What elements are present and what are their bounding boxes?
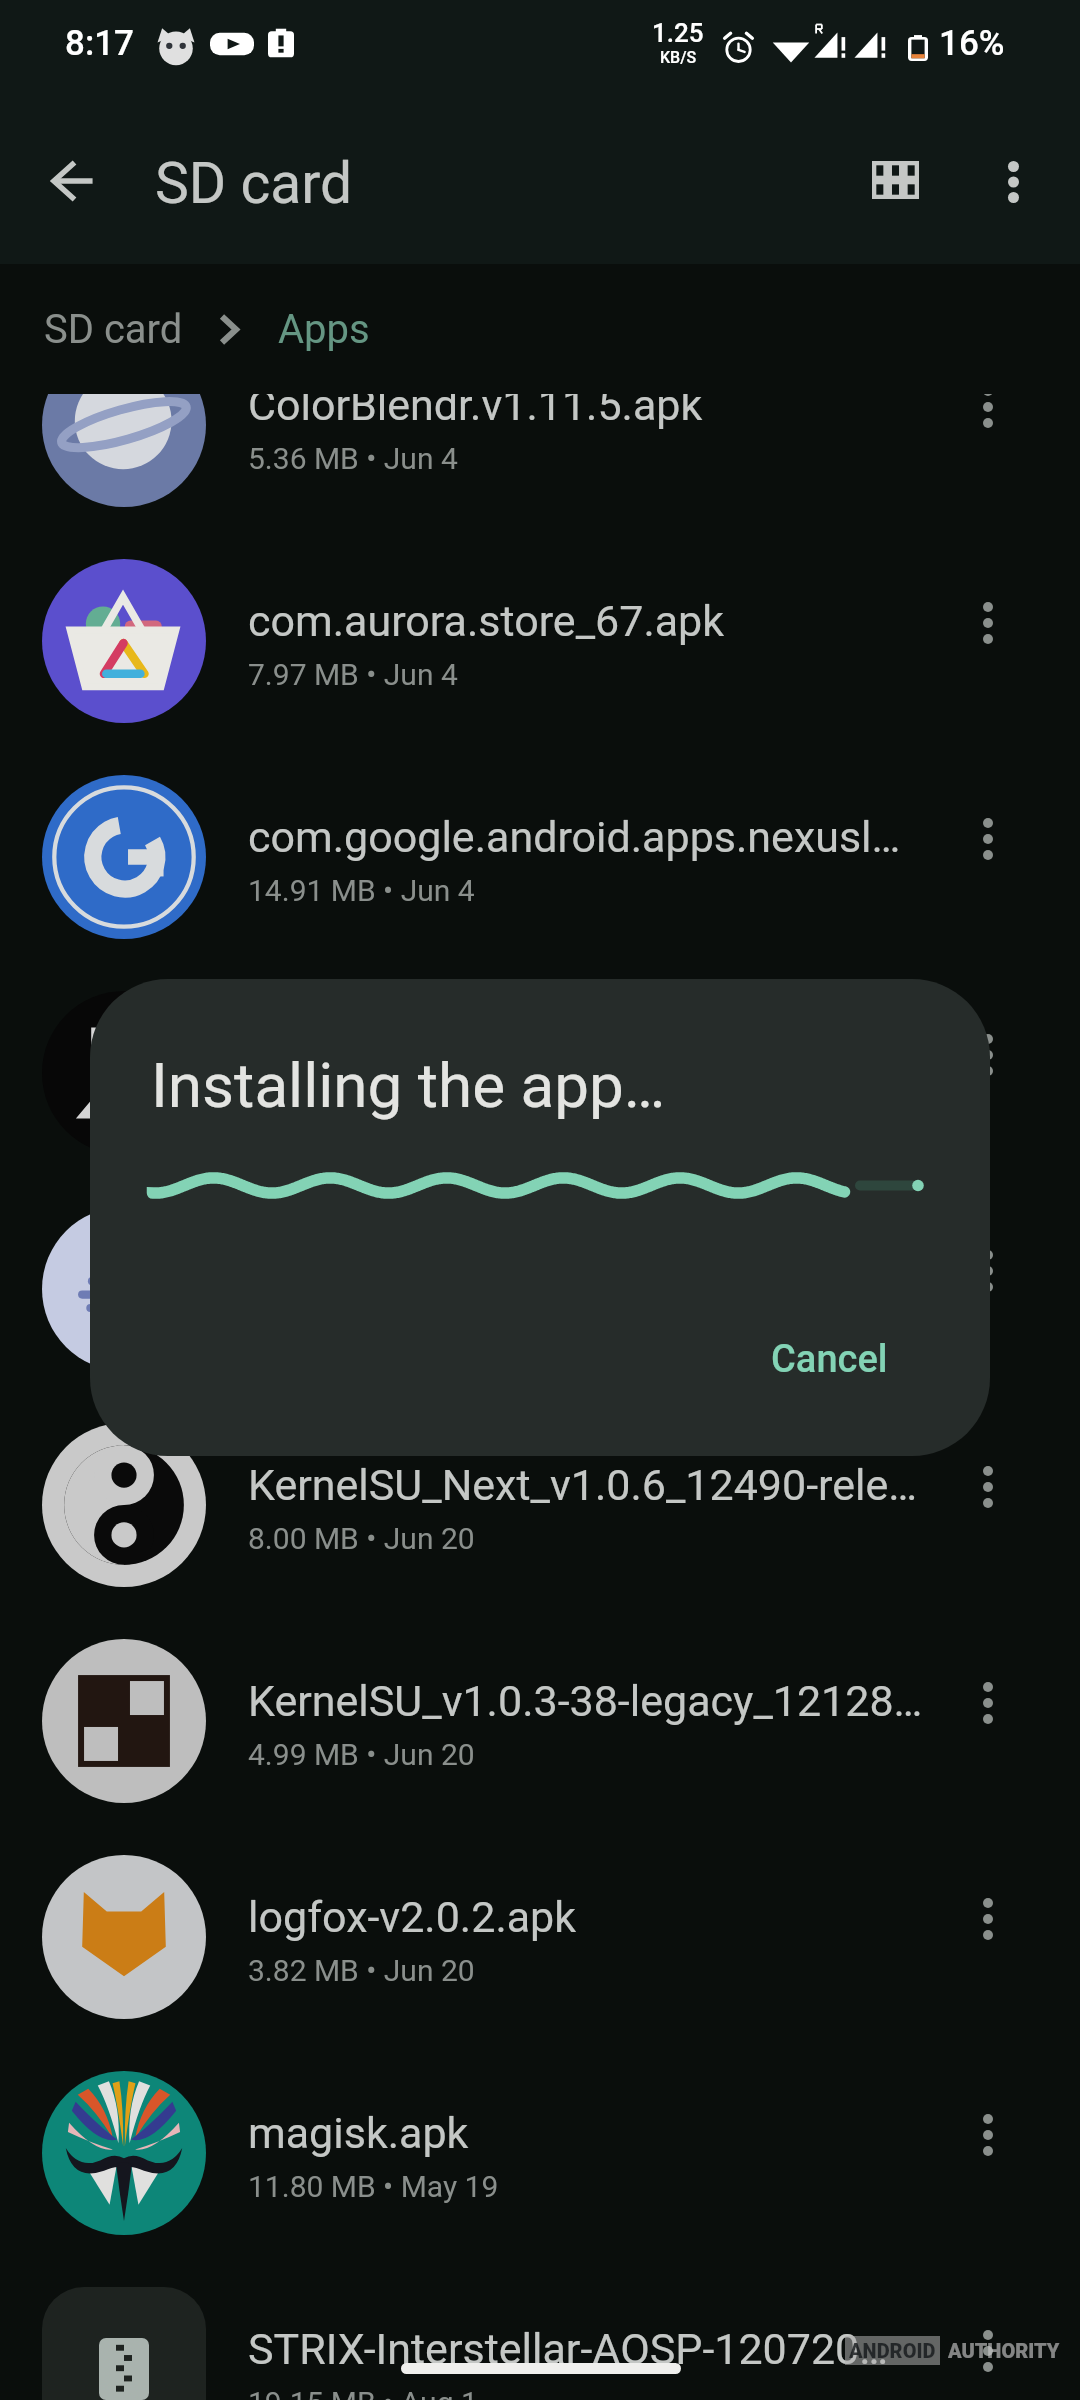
staticText: 5.24 MB • Jun 12	[248, 1089, 475, 1124]
button[interactable]: ZArchiver_1.0.9.apk	[0, 965, 1080, 1181]
button[interactable]: More options	[942, 1225, 1034, 1317]
button[interactable]: com.aurora.store_67.apk	[0, 533, 1080, 749]
staticText: KernelSU_v1.0.3-38-legacy_12128…	[248, 1676, 923, 1726]
button[interactable]: More options	[942, 793, 1034, 885]
button[interactable]: More options	[942, 1009, 1034, 1101]
button[interactable]: More options	[942, 2089, 1034, 2181]
staticText: KB/S	[660, 48, 697, 67]
button[interactable]: KernelSU_Next_v1.0.6_12490-rele…	[0, 1397, 1080, 1613]
staticText: logfox-v2.0.2.apk	[248, 1892, 577, 1942]
button[interactable]: com.google.android.apps.nexusl…	[0, 749, 1080, 965]
staticText: 5.36 MB • Jun 4	[248, 441, 458, 476]
button[interactable]: Grid view	[849, 134, 941, 226]
staticText: 8.00 MB • Jun 20	[248, 1521, 475, 1556]
staticText: 4.99 MB • Jun 20	[248, 1737, 475, 1772]
staticText: com.google.android.apps.nexusl…	[248, 812, 901, 862]
staticText: ColorBlendr.v1.11.5.apk	[248, 394, 703, 430]
button[interactable]: Fennec_F-Droid.apk	[0, 1181, 1080, 1397]
button[interactable]: Cancel	[743, 1317, 916, 1402]
button[interactable]: KernelSU_v1.0.3-38-legacy_12128…	[0, 1613, 1080, 1829]
staticText: 8:17	[65, 23, 134, 64]
staticText: com.aurora.store_67.apk	[248, 596, 725, 646]
button[interactable]: STRIX-Interstellar-AOSP-120720…	[0, 2261, 1080, 2400]
button[interactable]: Back	[26, 135, 118, 227]
button[interactable]: More options	[967, 136, 1059, 228]
staticText: 3.82 MB • Jun 20	[248, 1953, 475, 1988]
button[interactable]: magisk.apk	[0, 2045, 1080, 2261]
staticText: ANDROID	[849, 2339, 936, 2362]
button[interactable]: Apps	[278, 306, 370, 353]
staticText: KernelSU_Next_v1.0.6_12490-rele…	[248, 1460, 918, 1510]
button[interactable]: More options	[942, 2305, 1034, 2397]
button[interactable]: SD card	[44, 306, 183, 353]
staticText: SD card	[155, 150, 353, 217]
staticText: Installing the app…	[151, 1049, 666, 1122]
staticText: 7.97 MB • Jun 4	[248, 657, 458, 692]
staticText: Cancel	[771, 1337, 888, 1382]
button[interactable]: ColorBlendr.v1.11.5.apk	[0, 394, 1080, 533]
button[interactable]: More options	[942, 394, 1034, 453]
button[interactable]: logfox-v2.0.2.apk	[0, 1829, 1080, 2045]
button[interactable]: More options	[942, 1657, 1034, 1749]
staticText: 1.25	[652, 18, 704, 48]
staticText: 14.91 MB • Jun 4	[248, 873, 475, 908]
staticText: 16%	[939, 23, 1005, 64]
button[interactable]: More options	[942, 1441, 1034, 1533]
staticText: STRIX-Interstellar-AOSP-120720…	[248, 2324, 889, 2374]
staticText: AUTHORITY	[948, 2339, 1060, 2362]
staticText: magisk.apk	[248, 2108, 469, 2158]
staticText: 19.15 MB • Aug 1	[248, 2385, 478, 2400]
staticText: ZArchiver_1.0.9.apk	[248, 1028, 627, 1078]
button[interactable]: More options	[942, 577, 1034, 669]
button[interactable]: More options	[942, 1873, 1034, 1965]
staticText: 11.80 MB • May 19	[248, 2169, 499, 2204]
